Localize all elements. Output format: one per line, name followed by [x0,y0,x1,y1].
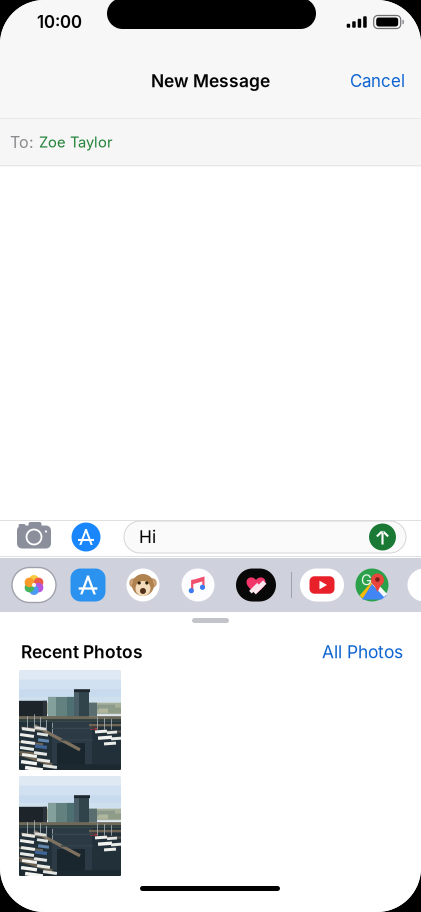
button[interactable]: Digital Touch [234,558,278,612]
button[interactable]: Apps [69,519,103,555]
button[interactable]: Recent photo 2 [19,776,121,876]
button[interactable]: App Store [66,558,110,612]
button[interactable]: All Photos [322,641,403,662]
staticText: To: [10,132,34,152]
staticText: G [361,571,372,589]
button[interactable]: More apps [402,558,421,612]
staticText: Recent Photos [21,641,143,662]
staticText: New Message [151,70,270,91]
button[interactable]: Photos [8,558,60,612]
button[interactable]: Memoji [121,558,165,612]
staticText: Zoe Taylor [39,133,113,151]
button[interactable]: YouTube [296,558,348,612]
button[interactable]: Camera [14,519,54,555]
button[interactable]: Maps [350,558,394,612]
staticText: 10:00 [37,12,82,32]
button[interactable]: Recent photo 1 [19,670,121,770]
button[interactable]: Music [176,558,220,612]
button[interactable]: Cancel [334,50,421,112]
staticText: Hi [139,526,156,547]
button[interactable]: Send [369,523,396,550]
staticText: Cancel [350,71,405,91]
staticText: All Photos [322,641,403,662]
